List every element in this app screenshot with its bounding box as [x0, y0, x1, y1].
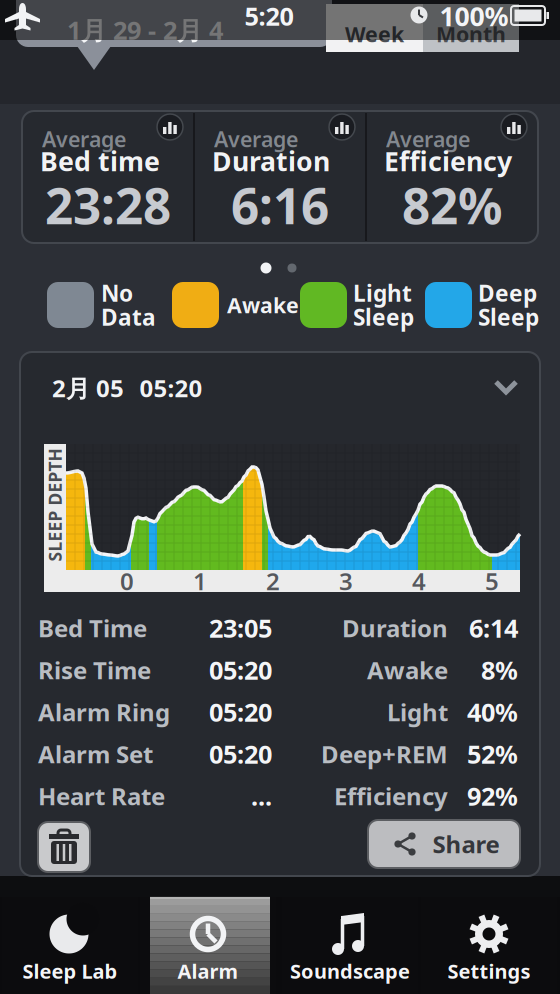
staticText: 05:20 [209, 695, 272, 729]
staticText: SLEEP DEPTH [0, 493, 111, 516]
staticText: Awake [227, 291, 299, 319]
staticText: Sleep [478, 302, 539, 332]
staticText: Duration [342, 612, 448, 644]
staticText: 6:14 [469, 611, 518, 645]
staticText: Light [353, 278, 412, 308]
staticText: Bed time [40, 143, 160, 179]
staticText: 5:20 [244, 0, 293, 33]
staticText: Heart Rate [38, 780, 165, 812]
button[interactable]: Week [326, 4, 423, 52]
staticText: Awake [367, 654, 448, 686]
staticText: Sleep [353, 302, 414, 332]
staticText: 6:16 [231, 172, 329, 238]
staticText: Alarm Set [38, 738, 153, 770]
staticText: 1 [193, 565, 207, 597]
staticText: Deep+REM [321, 738, 448, 770]
button[interactable]: Collapse day details [22, 352, 538, 412]
staticText: Average [386, 125, 470, 153]
button[interactable]: Show Bed time chart [156, 113, 184, 141]
staticText: 05:20 [139, 372, 202, 404]
staticText: ... [251, 779, 272, 813]
button[interactable]: Share [368, 820, 520, 868]
staticText: Efficiency [384, 143, 512, 179]
button[interactable]: Sleep Lab [2, 897, 138, 994]
staticText: 0 [120, 565, 134, 597]
staticText: 2 [266, 565, 280, 597]
staticText: Alarm [177, 958, 238, 984]
staticText: 1月 29 - 2月 4 [67, 13, 223, 47]
staticText: 05:20 [209, 737, 272, 771]
staticText: Settings [447, 958, 530, 984]
button[interactable]: Settings [421, 897, 557, 994]
button[interactable]: Show Duration chart [328, 113, 356, 141]
button[interactable]: Alarm [140, 897, 276, 994]
staticText: 52% [467, 737, 518, 771]
button[interactable]: Show Efficiency chart [500, 113, 528, 141]
staticText: Light [387, 696, 448, 728]
staticText: 23:05 [209, 611, 272, 645]
staticText: Soundscape [290, 958, 410, 984]
staticText: 92% [467, 779, 518, 813]
staticText: Average [214, 125, 298, 153]
button[interactable]: Soundscape [282, 897, 418, 994]
staticText: Data [101, 302, 156, 332]
staticText: 40% [467, 695, 518, 729]
staticText: Alarm Ring [38, 696, 170, 728]
staticText: 82% [402, 172, 502, 238]
staticText: 4 [412, 565, 426, 597]
staticText: Deep [478, 278, 537, 308]
staticText: 100% [439, 0, 508, 34]
staticText: Share [432, 828, 499, 860]
staticText: Duration [212, 143, 330, 179]
staticText: 5 [485, 565, 499, 597]
staticText: Sleep Lab [22, 958, 117, 984]
staticText: Bed Time [38, 612, 147, 644]
staticText: Month [436, 20, 506, 48]
staticText: No [101, 278, 133, 308]
staticText: Week [345, 20, 404, 48]
staticText: 05:20 [209, 653, 272, 687]
staticText: 2月 05 [52, 372, 124, 404]
button[interactable]: Delete [38, 822, 90, 872]
staticText: 23:28 [45, 172, 171, 238]
staticText: Average [42, 125, 126, 153]
staticText: 3 [339, 565, 353, 597]
staticText: Efficiency [334, 780, 448, 812]
staticText: 8% [481, 653, 518, 687]
button[interactable]: Month [423, 4, 519, 52]
staticText: Rise Time [38, 654, 151, 686]
